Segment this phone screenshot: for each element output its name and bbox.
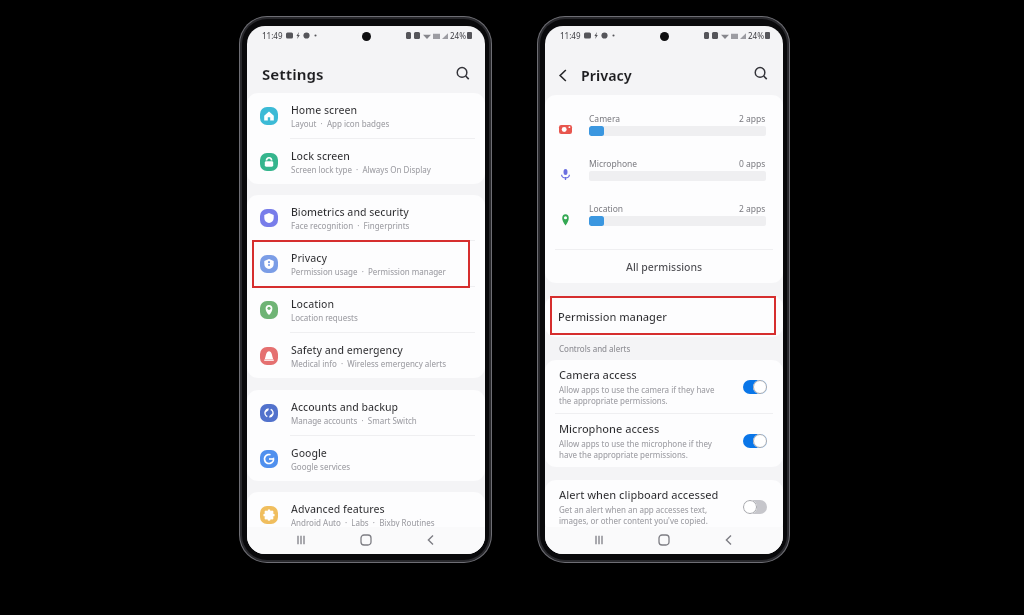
staticText: Screen lock type · Always On Display bbox=[291, 164, 431, 175]
button[interactable]: Back bbox=[552, 64, 574, 86]
staticText: Alert when clipboard accessed bbox=[559, 487, 719, 502]
staticText: Privacy bbox=[581, 66, 632, 85]
staticText: 2 apps bbox=[739, 113, 766, 125]
button[interactable]: Back bbox=[420, 529, 442, 551]
staticText: 11:49 bbox=[262, 30, 283, 41]
button[interactable]: Location bbox=[247, 287, 485, 333]
button[interactable]: Alert when clipboard accessed toggle bbox=[743, 500, 767, 514]
button[interactable]: Home screen bbox=[247, 93, 485, 139]
staticText: have the appropriate permissions. bbox=[559, 449, 688, 460]
button[interactable]: Recents bbox=[290, 529, 312, 551]
staticText: Microphone access bbox=[559, 421, 660, 436]
staticText: Biometrics and security bbox=[291, 205, 409, 219]
button[interactable]: All permissions bbox=[545, 250, 783, 283]
staticText: Accounts and backup bbox=[291, 400, 399, 414]
button[interactable]: Microphone access bbox=[545, 414, 783, 467]
staticText: Microphone bbox=[589, 158, 739, 170]
staticText: All permissions bbox=[626, 260, 703, 274]
staticText: Privacy bbox=[291, 251, 327, 265]
button[interactable]: Back bbox=[718, 529, 740, 551]
staticText: Google services bbox=[291, 461, 351, 472]
button[interactable]: Home bbox=[355, 529, 377, 551]
staticText: Android Auto · Labs · Bixby Routines bbox=[291, 517, 435, 528]
staticText: Face recognition · Fingerprints bbox=[291, 220, 410, 231]
staticText: Settings bbox=[262, 64, 324, 84]
button[interactable]: Home bbox=[653, 529, 675, 551]
staticText: Allow apps to use the camera if they hav… bbox=[559, 384, 715, 395]
staticText: Advanced features bbox=[291, 502, 385, 516]
button[interactable]: Biometrics and security bbox=[247, 195, 485, 241]
staticText: Google bbox=[291, 446, 327, 460]
staticText: the appropriate permissions. bbox=[559, 395, 668, 406]
button[interactable]: Search bbox=[750, 63, 772, 85]
staticText: Allow apps to use the microphone if they bbox=[559, 438, 712, 449]
staticText: Permission manager bbox=[558, 309, 667, 324]
staticText: Location bbox=[291, 297, 335, 311]
staticText: 24% bbox=[450, 30, 466, 41]
staticText: 11:49 bbox=[560, 30, 581, 41]
button[interactable]: Camera access toggle bbox=[743, 380, 767, 394]
button[interactable]: Camera access bbox=[545, 360, 783, 414]
staticText: Get an alert when an app accesses text, bbox=[559, 504, 708, 515]
button[interactable]: Accounts and backup bbox=[247, 390, 485, 436]
button[interactable]: Alert when clipboard accessed bbox=[545, 480, 783, 533]
staticText: Camera access bbox=[559, 367, 637, 382]
staticText: 24% bbox=[748, 30, 764, 41]
staticText: Safety and emergency bbox=[291, 343, 403, 357]
staticText: Lock screen bbox=[291, 149, 350, 163]
button[interactable]: Google bbox=[247, 436, 485, 481]
staticText: Permission usage · Permission manager bbox=[291, 266, 446, 277]
button[interactable]: Recents bbox=[588, 529, 610, 551]
staticText: Controls and alerts bbox=[559, 343, 631, 354]
staticText: Medical info · Wireless emergency alerts bbox=[291, 358, 446, 369]
staticText: 0 apps bbox=[739, 158, 766, 170]
button[interactable]: Advanced features bbox=[247, 492, 485, 537]
staticText: Manage accounts · Smart Switch bbox=[291, 415, 417, 426]
staticText: Location requests bbox=[291, 312, 358, 323]
staticText: Home screen bbox=[291, 103, 358, 117]
button[interactable]: Search bbox=[452, 63, 474, 85]
button[interactable]: Permission manager bbox=[545, 296, 783, 337]
button[interactable]: Safety and emergency bbox=[247, 333, 485, 378]
staticText: Location bbox=[589, 203, 739, 215]
button[interactable]: Privacy bbox=[247, 241, 485, 287]
staticText: Camera bbox=[589, 113, 739, 125]
button[interactable]: Lock screen bbox=[247, 139, 485, 184]
staticText: Layout · App icon badges bbox=[291, 118, 390, 129]
staticText: 2 apps bbox=[739, 203, 766, 215]
staticText: images, or other content you've copied. bbox=[559, 515, 708, 526]
button[interactable]: Microphone access toggle bbox=[743, 434, 767, 448]
